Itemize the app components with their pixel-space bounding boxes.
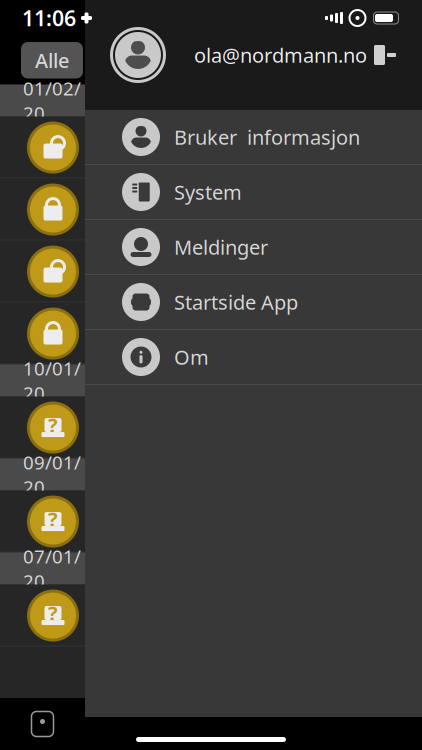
- staticText: 01/02/20: [23, 76, 81, 125]
- staticText: 07/01/20: [23, 544, 81, 593]
- button[interactable]: System: [85, 165, 422, 220]
- button[interactable]: Startside App: [85, 275, 422, 330]
- staticText: Bruker informasjon: [174, 124, 360, 150]
- button[interactable]: Security: [0, 698, 85, 750]
- staticText: Alle: [35, 47, 69, 74]
- button[interactable]: Log out: [368, 38, 402, 72]
- staticText: ?: [48, 412, 58, 438]
- staticText: 11:06: [22, 4, 76, 32]
- button[interactable]: Om: [85, 330, 422, 385]
- staticText: System: [174, 179, 242, 205]
- button[interactable]: Bruker informasjon: [85, 110, 422, 165]
- button[interactable]: Meldinger: [85, 220, 422, 275]
- staticText: Om: [174, 344, 209, 370]
- staticText: ?: [48, 600, 58, 626]
- staticText: 09/01/20: [23, 450, 81, 499]
- staticText: ola@nordmann.no: [194, 42, 367, 68]
- staticText: Meldinger: [174, 234, 268, 260]
- staticText: ?: [48, 506, 58, 532]
- staticText: Startside App: [174, 289, 298, 315]
- staticText: 10/01/20: [23, 356, 81, 405]
